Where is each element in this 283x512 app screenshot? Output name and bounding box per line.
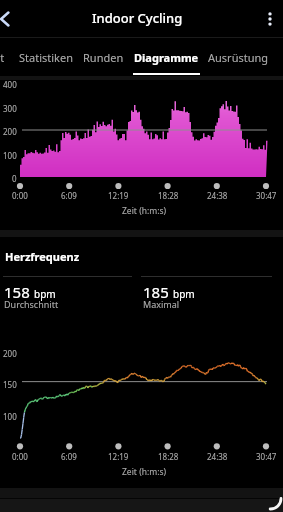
staticText: 0 bbox=[12, 173, 17, 184]
staticText: 24:38 bbox=[207, 451, 228, 461]
staticText: 200 bbox=[3, 348, 17, 359]
staticText: 200 bbox=[3, 126, 17, 137]
staticText: 30:47 bbox=[256, 451, 277, 461]
staticText: 18:28 bbox=[158, 451, 179, 461]
staticText: 30:47 bbox=[256, 190, 277, 200]
button[interactable]: Statistiken bbox=[12, 38, 80, 75]
staticText: Ausrüstung bbox=[208, 50, 269, 65]
staticText: Durchschnitt bbox=[4, 298, 59, 310]
staticText: 400 bbox=[3, 79, 17, 90]
staticText: 100 bbox=[3, 411, 17, 422]
staticText: 0:00 bbox=[12, 190, 28, 200]
button[interactable]: Ausrüstung bbox=[201, 38, 275, 75]
staticText: 300 bbox=[3, 103, 17, 114]
staticText: Runden bbox=[83, 50, 124, 65]
staticText: at bbox=[0, 50, 5, 65]
button[interactable]: at bbox=[0, 38, 13, 75]
staticText: 24:38 bbox=[207, 190, 228, 200]
staticText: bpm bbox=[173, 287, 195, 301]
staticText: 18:28 bbox=[158, 190, 179, 200]
staticText: Diagramme bbox=[134, 50, 199, 65]
button[interactable]: Runden bbox=[78, 38, 129, 75]
staticText: Zeit (h:m:s) bbox=[122, 205, 167, 215]
staticText: 100 bbox=[3, 150, 17, 161]
staticText: 158 bbox=[4, 282, 30, 302]
staticText: 0:00 bbox=[12, 451, 28, 461]
staticText: 12:19 bbox=[108, 451, 129, 461]
staticText: bpm bbox=[34, 287, 56, 301]
staticText: Statistiken bbox=[19, 50, 73, 65]
staticText: Zeit (h:m:s) bbox=[122, 466, 167, 476]
staticText: Indoor Cycling bbox=[92, 9, 183, 27]
staticText: Maximal bbox=[143, 298, 180, 310]
staticText: 185 bbox=[143, 282, 169, 302]
staticText: 6:09 bbox=[61, 451, 77, 461]
button[interactable]: Diagramme bbox=[126, 38, 206, 75]
staticText: 6:09 bbox=[61, 190, 77, 200]
button[interactable]: More options bbox=[252, 1, 283, 37]
staticText: 12:19 bbox=[108, 190, 129, 200]
staticText: 150 bbox=[3, 379, 17, 390]
button[interactable]: Back bbox=[0, 2, 21, 36]
staticText: Herzfrequenz bbox=[5, 249, 80, 264]
